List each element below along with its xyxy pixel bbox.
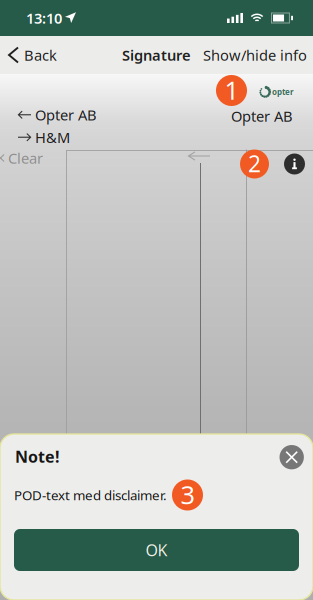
- staticText: POD-text med disclaimer.: [14, 486, 167, 504]
- staticText: opter: [272, 87, 294, 97]
- button[interactable]: Info: [279, 149, 309, 179]
- staticText: 13:10: [26, 8, 62, 28]
- staticText: 3: [180, 478, 194, 511]
- staticText: Signature: [122, 45, 191, 65]
- button[interactable]: Back: [0, 36, 65, 74]
- staticText: 2: [248, 148, 261, 178]
- staticText: 1: [224, 73, 238, 107]
- staticText: Show/hide info: [203, 45, 307, 65]
- staticText: Note!: [15, 446, 60, 467]
- staticText: Clear: [8, 148, 43, 168]
- staticText: H&M: [35, 127, 70, 147]
- staticText: Back: [24, 45, 57, 65]
- staticText: OK: [145, 539, 167, 561]
- staticText: Opter AB: [35, 105, 97, 124]
- staticText: Opter AB: [231, 106, 293, 126]
- button[interactable]: Show/hide info: [203, 36, 313, 74]
- button[interactable]: Clear: [0, 142, 63, 174]
- button[interactable]: OK: [14, 529, 299, 571]
- button[interactable]: Close note: [275, 440, 309, 474]
